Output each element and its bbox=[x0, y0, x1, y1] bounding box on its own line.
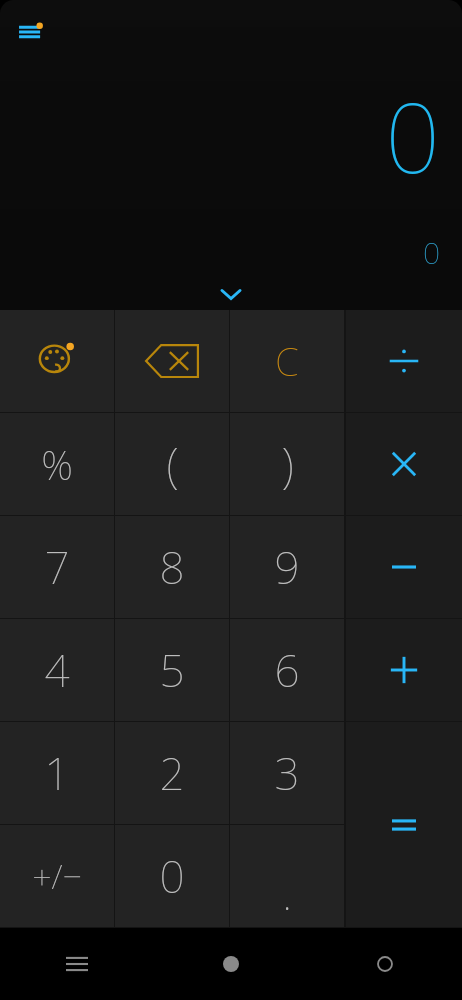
other: Equals bbox=[346, 722, 462, 927]
staticText: 9 bbox=[274, 537, 300, 597]
button[interactable]: Backspace bbox=[115, 310, 229, 412]
button[interactable]: 6 bbox=[230, 619, 344, 721]
button[interactable]: Home bbox=[154, 928, 308, 1000]
staticText: ( bbox=[166, 432, 179, 497]
button[interactable]: 9 bbox=[230, 516, 344, 618]
staticText: . bbox=[282, 863, 292, 923]
other: Backspace bbox=[144, 333, 200, 389]
button[interactable]: 8 bbox=[115, 516, 229, 618]
other: Multiply bbox=[382, 442, 426, 486]
staticText: % bbox=[41, 437, 73, 491]
staticText: 4 bbox=[44, 640, 70, 700]
other: Add bbox=[382, 648, 426, 692]
button[interactable]: 0 bbox=[115, 825, 229, 927]
button[interactable]: Subtract bbox=[346, 516, 462, 618]
button[interactable]: Recents bbox=[0, 928, 154, 1000]
staticText: 0 bbox=[422, 232, 440, 273]
staticText: 1 bbox=[44, 743, 70, 803]
staticText: 0 bbox=[159, 846, 185, 906]
button[interactable]: Add bbox=[346, 619, 462, 721]
staticText: 2 bbox=[159, 743, 185, 803]
other: Subtract bbox=[382, 545, 426, 589]
staticText: C bbox=[275, 335, 299, 387]
button[interactable]: 4 bbox=[0, 619, 114, 721]
button[interactable]: Equals bbox=[346, 722, 462, 927]
button[interactable]: 7 bbox=[0, 516, 114, 618]
staticText: 3 bbox=[274, 743, 300, 803]
button[interactable]: 1 bbox=[0, 722, 114, 824]
button[interactable]: Expand history bbox=[214, 284, 248, 304]
button[interactable]: Menu bbox=[14, 14, 54, 54]
other: Divide bbox=[382, 339, 426, 383]
button[interactable]: Theme bbox=[0, 310, 114, 412]
staticText: 6 bbox=[274, 640, 300, 700]
staticText: 7 bbox=[44, 537, 70, 597]
button[interactable]: Multiply bbox=[346, 413, 462, 515]
button[interactable]: +/− bbox=[0, 825, 114, 927]
button[interactable]: Divide bbox=[346, 310, 462, 412]
button[interactable]: 2 bbox=[115, 722, 229, 824]
button[interactable]: Back bbox=[308, 928, 462, 1000]
staticText: 5 bbox=[159, 640, 185, 700]
button[interactable]: 5 bbox=[115, 619, 229, 721]
button[interactable]: 3 bbox=[230, 722, 344, 824]
button[interactable]: . bbox=[230, 825, 344, 927]
staticText: +/− bbox=[32, 853, 82, 899]
button[interactable]: ( bbox=[115, 413, 229, 515]
staticText: 8 bbox=[159, 537, 185, 597]
staticText: 0 bbox=[385, 70, 440, 201]
button[interactable]: % bbox=[0, 413, 114, 515]
button[interactable]: C bbox=[230, 310, 344, 412]
other: Theme bbox=[34, 338, 80, 384]
staticText: ) bbox=[281, 432, 294, 497]
button[interactable]: ) bbox=[230, 413, 344, 515]
